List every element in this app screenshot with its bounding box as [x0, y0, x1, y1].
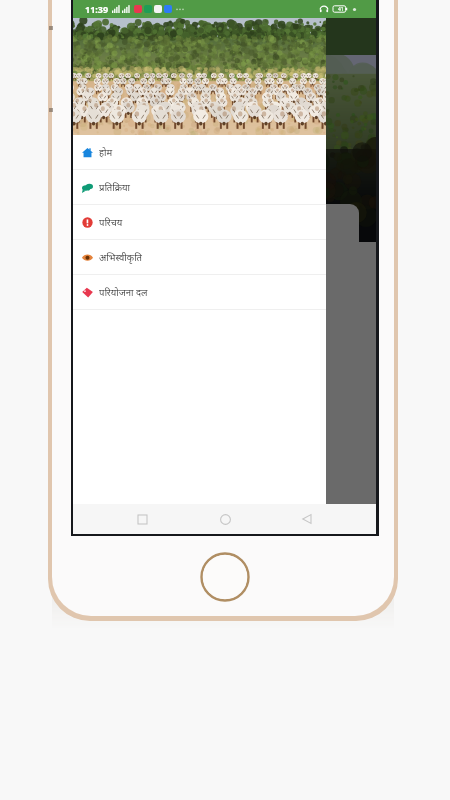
staticText: परिचय: [99, 216, 123, 229]
staticText: प्रतिक्रिया: [99, 181, 131, 194]
button[interactable]: होम: [73, 135, 326, 169]
button[interactable]: Home: [211, 505, 239, 533]
staticText: 11:39: [85, 3, 109, 15]
staticText: अभिस्वीकृति: [99, 251, 143, 264]
button[interactable]: Recent apps: [128, 505, 156, 533]
staticText: होम: [99, 146, 113, 159]
button[interactable]: प्रतिक्रिया: [73, 170, 326, 204]
button[interactable]: Back: [293, 505, 321, 533]
staticText: 41: [338, 6, 344, 13]
button[interactable]: अभिस्वीकृति: [73, 240, 326, 274]
button[interactable]: परियोजना दल: [73, 275, 326, 309]
button[interactable]: परिचय: [73, 205, 326, 239]
staticText: परियोजना दल: [99, 286, 148, 299]
